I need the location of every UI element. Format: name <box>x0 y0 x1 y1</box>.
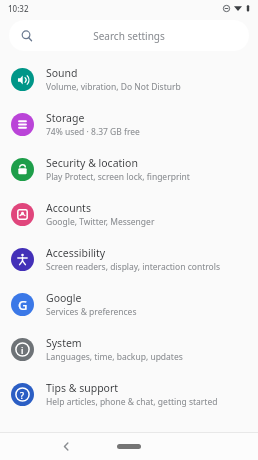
other: Search <box>21 30 33 42</box>
staticText: System <box>46 336 82 350</box>
staticText: Storage <box>46 111 85 125</box>
staticText: Sound <box>46 66 78 80</box>
staticText: Services & preferences <box>46 306 137 318</box>
staticText: i <box>21 344 24 356</box>
button[interactable]: ? <box>0 372 258 417</box>
staticText: Google <box>46 291 82 305</box>
button[interactable]: Accounts <box>0 192 258 237</box>
staticText: Volume, vibration, Do Not Disturb <box>46 81 181 93</box>
staticText: G <box>18 296 28 314</box>
button[interactable]: Security & location <box>0 147 258 192</box>
staticText: Help articles, phone & chat, getting sta… <box>46 396 218 408</box>
button[interactable]: Home <box>112 438 146 454</box>
staticText: Search settings <box>33 29 225 43</box>
staticText: Languages, time, backup, updates <box>46 351 183 363</box>
button[interactable]: Search <box>9 20 249 51</box>
staticText: Play Protect, screen lock, fingerprint <box>46 171 190 183</box>
staticText: Tips & support <box>46 381 119 395</box>
staticText: ? <box>20 389 25 401</box>
button[interactable]: Back <box>55 435 77 457</box>
button[interactable]: Accessibility <box>0 237 258 282</box>
staticText: Accessibility <box>46 246 106 260</box>
button[interactable]: Sound <box>0 57 258 102</box>
button[interactable]: i <box>0 327 258 372</box>
button[interactable]: Storage <box>0 102 258 147</box>
staticText: 74% used · 8.37 GB free <box>46 126 140 138</box>
button[interactable]: G <box>0 282 258 327</box>
staticText: 10:32 <box>8 3 29 14</box>
staticText: Screen readers, display, interaction con… <box>46 261 220 273</box>
staticText: Google, Twitter, Messenger <box>46 216 155 228</box>
staticText: Security & location <box>46 156 138 170</box>
staticText: Accounts <box>46 201 91 215</box>
